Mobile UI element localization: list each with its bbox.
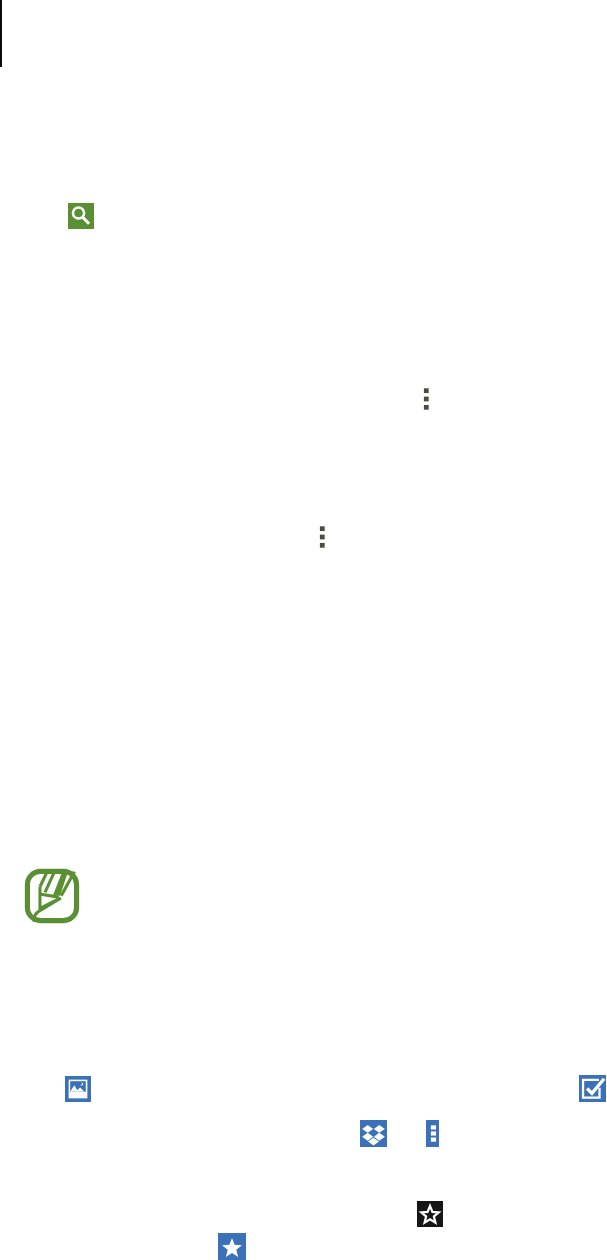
- button[interactable]: Insert image: [65, 1076, 91, 1102]
- button[interactable]: Favourite: [417, 1201, 443, 1227]
- button[interactable]: Dropbox: [360, 1120, 387, 1147]
- button[interactable]: Search: [68, 203, 94, 229]
- button[interactable]: Select: [579, 1075, 606, 1102]
- button[interactable]: More options: [426, 1120, 439, 1147]
- button[interactable]: More options: [419, 386, 433, 412]
- button[interactable]: More options: [315, 524, 329, 550]
- button[interactable]: Favourite: [218, 1233, 246, 1260]
- button[interactable]: S Note: [24, 868, 80, 924]
